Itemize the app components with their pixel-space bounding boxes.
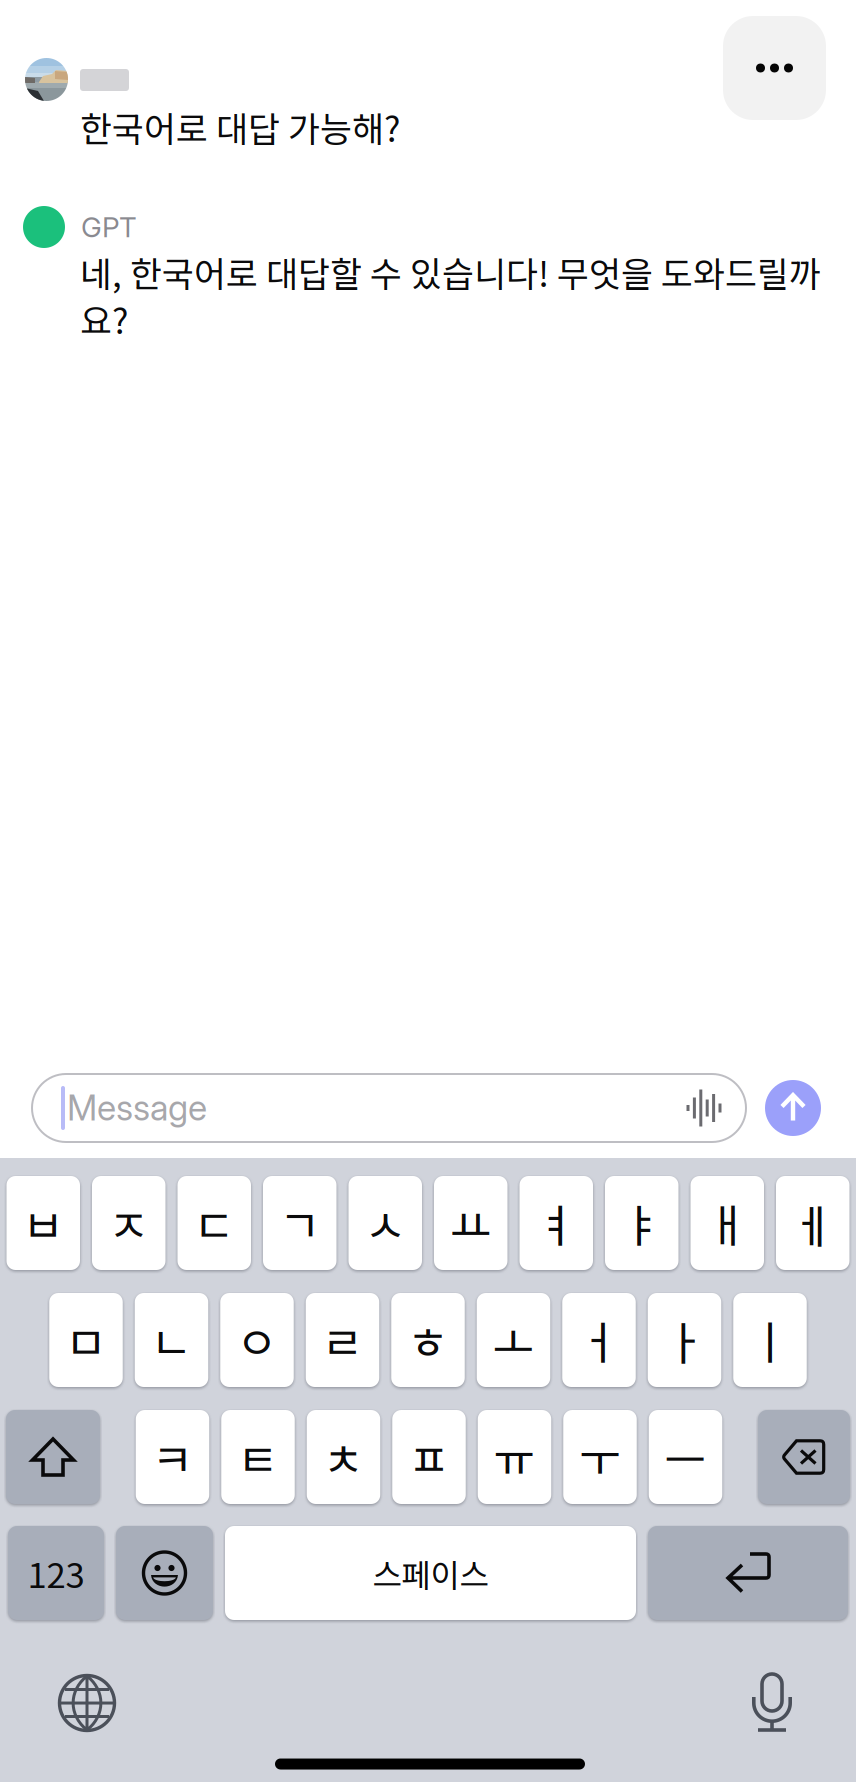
- button[interactable]: ㄹ: [306, 1293, 379, 1387]
- staticText: ㅁ: [65, 1307, 107, 1373]
- button[interactable]: ㅁ: [49, 1293, 123, 1387]
- staticText: ㅂ: [22, 1190, 64, 1256]
- staticText: ㅔ: [792, 1190, 834, 1256]
- staticText: 네, 한국어로 대답할 수 있습니다! 무엇을 도와드릴까: [80, 247, 821, 297]
- button[interactable]: ㅡ: [649, 1410, 722, 1504]
- button[interactable]: ㄴ: [135, 1293, 208, 1387]
- button[interactable]: 123: [8, 1526, 104, 1620]
- staticText: ㅑ: [621, 1190, 663, 1256]
- staticText: ㅇ: [236, 1307, 278, 1373]
- button[interactable]: ㄷ: [177, 1176, 251, 1270]
- button[interactable]: ㅐ: [690, 1176, 764, 1270]
- staticText: ㄹ: [321, 1307, 363, 1373]
- button[interactable]: Dictate: [752, 1674, 792, 1732]
- staticText: ㄱ: [279, 1190, 321, 1256]
- button[interactable]: ㅊ: [307, 1410, 380, 1504]
- staticText: GPT: [81, 210, 137, 244]
- button[interactable]: ㅇ: [220, 1293, 294, 1387]
- button[interactable]: ㅂ: [6, 1176, 80, 1270]
- staticText: ㅈ: [108, 1190, 150, 1256]
- button[interactable]: ㅛ: [434, 1176, 507, 1270]
- button[interactable]: Shift: [6, 1410, 100, 1504]
- staticText: ㄷ: [193, 1190, 235, 1256]
- button[interactable]: 스페이스: [225, 1526, 636, 1620]
- staticText: ㅠ: [493, 1424, 535, 1490]
- staticText: ㅐ: [706, 1190, 748, 1256]
- button[interactable]: ㅍ: [392, 1410, 466, 1504]
- button[interactable]: ㅔ: [776, 1176, 849, 1270]
- staticText: ㅓ: [578, 1307, 620, 1373]
- button[interactable]: ㅠ: [478, 1410, 551, 1504]
- staticText: ㅕ: [535, 1190, 577, 1256]
- staticText: ㅣ: [749, 1307, 791, 1373]
- staticText: ㅜ: [579, 1424, 621, 1490]
- staticText: ㅌ: [237, 1424, 279, 1490]
- button[interactable]: ㅜ: [563, 1410, 637, 1504]
- staticText: 한국어로 대답 가능해?: [80, 102, 400, 152]
- button[interactable]: ㄱ: [263, 1176, 336, 1270]
- button[interactable]: ㅕ: [519, 1176, 593, 1270]
- button[interactable]: Message: [32, 1074, 746, 1142]
- staticText: ㅡ: [664, 1424, 706, 1490]
- button[interactable]: Return: [648, 1526, 848, 1620]
- button[interactable]: ㅗ: [477, 1293, 550, 1387]
- staticText: ㅗ: [492, 1307, 534, 1373]
- staticText: ㅎ: [407, 1307, 449, 1373]
- button[interactable]: Send: [765, 1080, 821, 1136]
- staticText: Message: [67, 1087, 207, 1129]
- button[interactable]: More options: [723, 16, 826, 120]
- button[interactable]: Switch keyboard: [58, 1674, 115, 1731]
- staticText: 요?: [80, 294, 128, 344]
- button[interactable]: ㅣ: [733, 1293, 807, 1387]
- staticText: ㅍ: [408, 1424, 450, 1490]
- staticText: ㅛ: [450, 1190, 492, 1256]
- button[interactable]: ㅏ: [648, 1293, 721, 1387]
- staticText: ㅊ: [322, 1424, 364, 1490]
- button[interactable]: ㅅ: [348, 1176, 422, 1270]
- button[interactable]: ㅋ: [136, 1410, 209, 1504]
- staticText: ㅏ: [663, 1307, 705, 1373]
- button[interactable]: Delete: [758, 1410, 850, 1504]
- staticText: ㅅ: [364, 1190, 406, 1256]
- button[interactable]: ㅑ: [605, 1176, 678, 1270]
- staticText: 스페이스: [372, 1550, 488, 1596]
- button[interactable]: ㅈ: [92, 1176, 165, 1270]
- button[interactable]: ㅎ: [391, 1293, 465, 1387]
- staticText: ㄴ: [150, 1307, 192, 1373]
- staticText: 123: [27, 1548, 84, 1598]
- button[interactable]: ㅌ: [221, 1410, 295, 1504]
- button[interactable]: ㅓ: [562, 1293, 636, 1387]
- button[interactable]: Emoji: [116, 1526, 213, 1620]
- staticText: ㅋ: [151, 1424, 193, 1490]
